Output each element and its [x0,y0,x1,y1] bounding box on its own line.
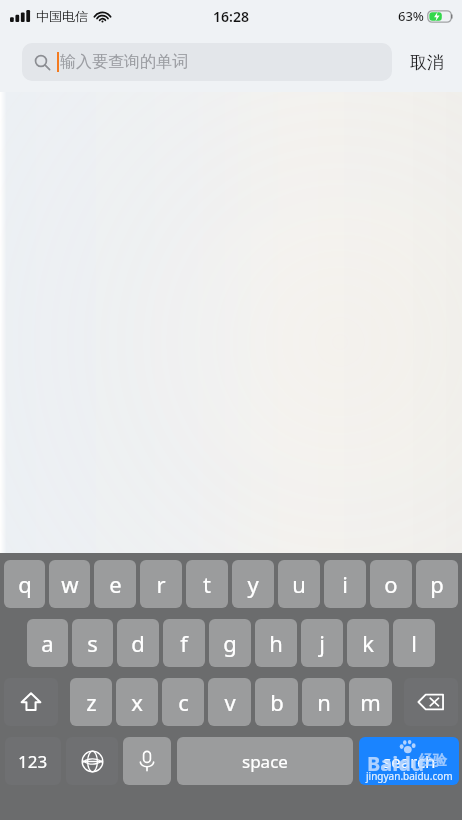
button[interactable]: g [209,619,251,667]
staticText: d [131,628,145,658]
button[interactable]: 输入要查询的单词 [22,43,392,81]
button[interactable]: t [186,560,228,608]
button[interactable]: 取消 [392,40,462,84]
staticText: p [430,569,444,599]
staticText: q [18,569,32,599]
staticText: 63% [398,7,424,25]
staticText: k [362,628,374,658]
staticText: a [41,628,54,658]
staticText: jingyan.baidu.com [366,769,453,783]
button[interactable]: x [116,678,158,726]
button[interactable]: Shift [4,678,58,726]
staticText: 16:28 [213,7,249,26]
button[interactable]: 123 [5,737,61,785]
button[interactable]: y [232,560,274,608]
staticText: i [342,569,348,599]
button[interactable]: s [72,619,113,667]
button[interactable]: Delete [404,678,458,726]
button[interactable]: v [208,678,251,726]
button[interactable]: b [255,678,298,726]
staticText: m [360,687,381,717]
button[interactable]: z [70,678,112,726]
button[interactable]: search [359,737,459,785]
button[interactable]: w [49,560,90,608]
button[interactable]: q [4,560,45,608]
staticText: t [203,569,211,599]
staticText: b [270,687,284,717]
staticText: 中国电信 [36,8,88,24]
staticText: v [224,687,236,717]
button[interactable]: l [393,619,435,667]
staticText: search [383,750,436,773]
button[interactable]: Voice input [123,737,171,785]
staticText: n [317,687,331,717]
staticText: x [131,687,143,717]
staticText: g [223,628,237,658]
button[interactable]: d [117,619,159,667]
button[interactable]: j [301,619,343,667]
staticText: r [156,569,166,599]
button[interactable]: r [140,560,182,608]
button[interactable]: k [347,619,389,667]
button[interactable]: i [324,560,366,608]
staticText: s [87,628,98,658]
staticText: z [86,687,97,717]
staticText: space [242,750,288,773]
staticText: h [269,628,283,658]
staticText: c [178,687,189,717]
button[interactable]: e [94,560,136,608]
staticText: j [319,628,325,658]
staticText: 输入要查询的单词 [60,52,188,72]
button[interactable]: c [162,678,204,726]
button[interactable]: m [349,678,392,726]
button[interactable]: o [370,560,412,608]
staticText: 经验 [419,752,447,770]
staticText: u [292,569,306,599]
button[interactable]: Change keyboard [66,737,118,785]
button[interactable]: n [302,678,345,726]
staticText: o [384,569,398,599]
staticText: y [247,569,259,599]
staticText: l [411,628,417,658]
button[interactable]: p [416,560,458,608]
button[interactable]: a [27,619,68,667]
button[interactable]: f [163,619,205,667]
staticText: w [61,569,79,599]
button[interactable]: h [255,619,297,667]
button[interactable]: u [278,560,320,608]
staticText: e [109,569,122,599]
staticText: 123 [18,750,48,773]
staticText: Baidu [367,750,424,777]
staticText: 取消 [410,52,444,73]
button[interactable]: space [177,737,353,785]
staticText: f [180,628,188,658]
